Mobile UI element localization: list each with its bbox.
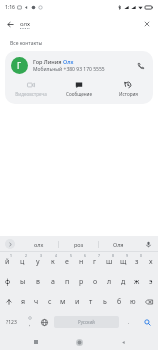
button[interactable]: п — [60, 272, 74, 292]
button[interactable]: ш — [102, 252, 116, 272]
button[interactable]: Back — [2, 16, 18, 32]
staticText: ш — [106, 257, 113, 267]
button[interactable]: Clear — [139, 16, 155, 32]
staticText: ж — [134, 277, 140, 287]
staticText: ф — [5, 277, 11, 287]
button[interactable]: Сообщение — [56, 79, 102, 99]
staticText: ц — [20, 257, 25, 267]
button[interactable]: р — [74, 272, 88, 292]
button[interactable]: л — [102, 272, 116, 292]
button[interactable]: а — [45, 272, 60, 292]
button[interactable]: щ — [116, 252, 130, 272]
staticText: б — [117, 297, 122, 307]
staticText: ч — [34, 297, 39, 307]
staticText: ю — [130, 297, 136, 307]
button[interactable]: х — [144, 252, 158, 272]
button[interactable]: б — [112, 292, 126, 312]
button[interactable]: Back — [115, 334, 131, 350]
staticText: Мобильный +380 93 170 5555 — [33, 66, 105, 73]
staticText: олх — [34, 241, 44, 248]
staticText: а — [51, 277, 55, 287]
staticText: 4 — [55, 253, 57, 258]
staticText: в — [36, 277, 40, 287]
staticText: н — [79, 257, 84, 267]
button[interactable]: н — [74, 252, 88, 272]
staticText: д — [121, 277, 126, 287]
staticText: э — [149, 277, 153, 287]
staticText: 6 — [84, 253, 86, 258]
button[interactable]: е — [60, 252, 74, 272]
button[interactable]: г — [88, 252, 102, 272]
button[interactable]: о — [88, 272, 102, 292]
staticText: у — [36, 257, 40, 267]
button[interactable]: Emoji — [22, 312, 37, 332]
staticText: Олх — [63, 58, 74, 65]
button[interactable]: Home — [71, 334, 87, 350]
button[interactable]: д — [116, 272, 130, 292]
staticText: и — [75, 297, 80, 307]
button[interactable]: к — [45, 252, 60, 272]
button[interactable]: э — [144, 272, 158, 292]
staticText: 0 — [140, 253, 142, 258]
button[interactable]: с — [43, 292, 56, 312]
staticText: олх — [20, 20, 31, 28]
button[interactable]: у — [30, 252, 45, 272]
staticText: 7 — [98, 253, 100, 258]
button[interactable]: роз — [59, 236, 98, 252]
staticText: х — [149, 257, 153, 267]
staticText: т — [89, 297, 93, 307]
staticText: роз — [74, 241, 84, 248]
staticText: Гор Линия — [33, 58, 63, 65]
button[interactable]: Г — [5, 51, 153, 79]
button[interactable]: Видеовстреча — [8, 79, 54, 99]
button[interactable]: Voice input — [138, 236, 158, 252]
button[interactable]: й — [0, 252, 15, 272]
button[interactable]: Call — [133, 58, 147, 72]
staticText: Оля — [113, 241, 124, 248]
button[interactable]: Оля — [99, 236, 138, 252]
button[interactable]: ж — [130, 272, 144, 292]
staticText: з — [135, 257, 139, 267]
staticText: й — [5, 257, 10, 267]
button[interactable]: ю — [126, 292, 140, 312]
button[interactable]: т — [84, 292, 98, 312]
staticText: , — [29, 321, 31, 328]
staticText: 1:16 — [5, 4, 15, 11]
button[interactable]: в — [30, 272, 45, 292]
staticText: с — [48, 297, 52, 307]
button[interactable]: ц — [15, 252, 30, 272]
staticText: 1 — [10, 253, 12, 258]
staticText: Видеовстреча — [15, 91, 47, 97]
button[interactable]: Change language — [37, 312, 52, 332]
button[interactable]: олх — [20, 236, 58, 252]
button[interactable]: ф — [0, 272, 15, 292]
button[interactable]: ь — [98, 292, 112, 312]
staticText: Сообщение — [66, 91, 92, 97]
staticText: р — [79, 277, 84, 287]
button[interactable]: История — [105, 79, 151, 99]
button[interactable]: Русский — [54, 316, 119, 328]
button[interactable]: ?123 — [0, 312, 22, 332]
staticText: 9 — [126, 253, 128, 258]
staticText: 8 — [112, 253, 114, 258]
staticText: Русский — [78, 319, 95, 325]
button[interactable]: Search — [136, 312, 158, 332]
staticText: . — [128, 319, 130, 326]
staticText: ь — [103, 297, 107, 307]
staticText: ?123 — [6, 319, 17, 326]
button[interactable]: м — [56, 292, 70, 312]
button[interactable]: я — [17, 292, 30, 312]
button[interactable]: Recents — [28, 334, 44, 350]
button[interactable]: ы — [15, 272, 30, 292]
button[interactable]: и — [70, 292, 84, 312]
staticText: Г — [17, 60, 22, 71]
staticText: к — [51, 257, 55, 267]
staticText: п — [65, 277, 70, 287]
button[interactable]: ч — [30, 292, 43, 312]
button[interactable]: з — [130, 252, 144, 272]
button[interactable]: More suggestions — [0, 236, 20, 252]
staticText: о — [93, 277, 98, 287]
button[interactable]: Shift — [0, 292, 17, 312]
button[interactable]: Backspace — [140, 292, 158, 312]
